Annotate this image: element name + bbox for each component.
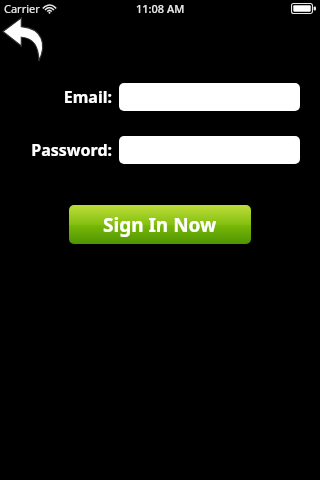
button[interactable] (119, 136, 300, 164)
staticText: Password: (31, 139, 112, 161)
staticText: Sign In Now (103, 212, 217, 238)
button[interactable]: Back (2, 17, 48, 61)
button[interactable] (119, 83, 300, 111)
staticText: 11:08 AM (136, 1, 185, 16)
staticText: Carrier (4, 1, 40, 16)
button[interactable]: Sign In Now (69, 205, 251, 244)
staticText: Email: (63, 86, 112, 108)
